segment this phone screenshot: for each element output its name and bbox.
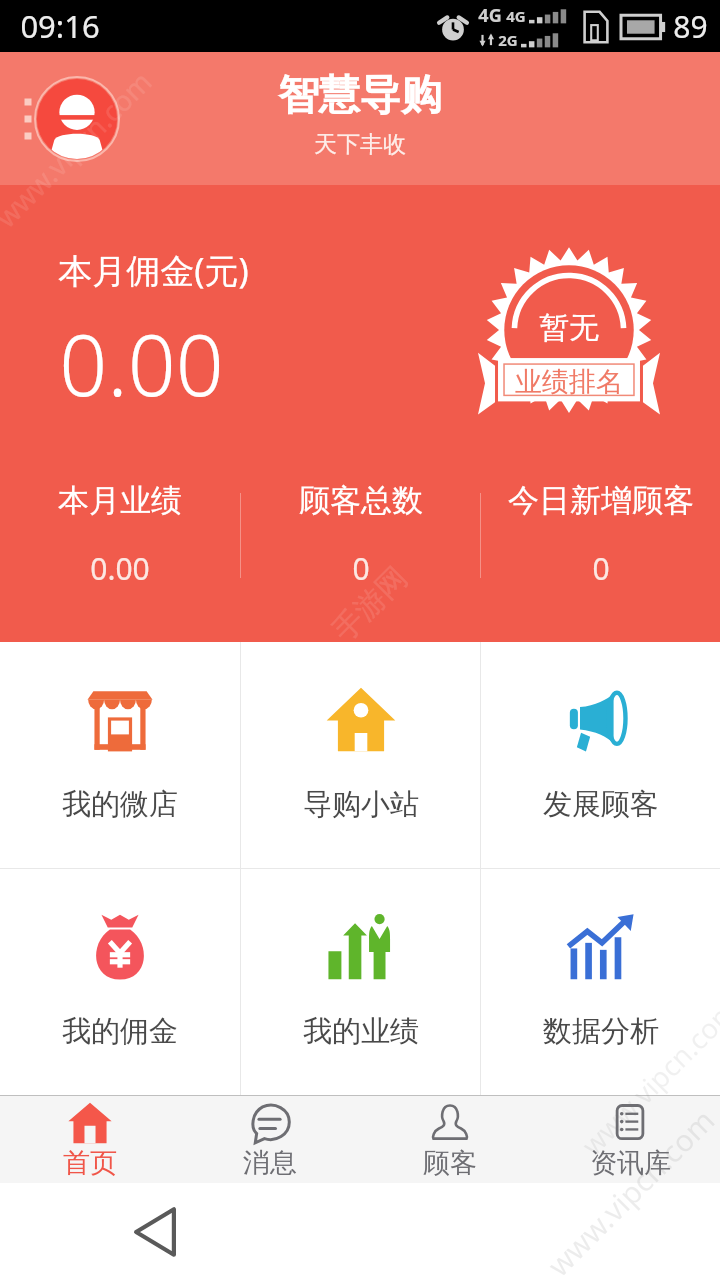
staticText: 发展顾客 — [543, 786, 659, 823]
staticText: 暂无 — [539, 309, 599, 347]
staticText: 资讯库 — [590, 1146, 671, 1180]
button[interactable]: 首页 — [0, 1096, 180, 1183]
staticText: 4G — [478, 3, 502, 28]
staticText: 今日新增顾客 — [508, 481, 694, 520]
button[interactable]: Back — [128, 1205, 182, 1259]
staticText: 0 — [592, 548, 610, 589]
staticText: 消息 — [243, 1146, 297, 1180]
staticText: 顾客 — [423, 1146, 477, 1180]
button[interactable]: 顾客 — [360, 1096, 540, 1183]
button[interactable]: 我的业绩 — [241, 869, 480, 1095]
staticText: 0.00 — [90, 548, 150, 589]
staticText: 0 — [352, 548, 370, 589]
button[interactable]: 我的微店 — [0, 642, 240, 868]
staticText: 09:16 — [20, 5, 100, 47]
staticText: www.vipcn.com — [0, 63, 159, 235]
staticText: 手游网 — [325, 559, 415, 649]
button[interactable]: 发展顾客 — [481, 642, 720, 868]
staticText: 智慧导购 — [278, 70, 442, 122]
button[interactable]: 资讯库 — [540, 1096, 720, 1183]
button[interactable]: More options — [10, 101, 46, 137]
staticText: 4G — [506, 6, 526, 26]
staticText: 0.00 — [59, 306, 224, 420]
button[interactable]: 数据分析 — [481, 869, 720, 1095]
staticText: 导购小站 — [303, 786, 419, 823]
staticText: 我的微店 — [62, 786, 178, 823]
button[interactable]: 消息 — [180, 1096, 360, 1183]
staticText: 顾客总数 — [299, 481, 423, 520]
staticText: 本月业绩 — [58, 481, 182, 520]
button[interactable]: 业绩排名 — [478, 267, 660, 419]
staticText: 本月佣金(元) — [58, 247, 249, 293]
button[interactable]: 我的佣金 — [0, 869, 240, 1095]
staticText: 89 — [673, 6, 708, 47]
staticText: 天下丰收 — [314, 130, 406, 159]
staticText: www.vipcn.com — [573, 991, 720, 1163]
staticText: www.vipcn.com — [538, 1100, 720, 1280]
staticText: 我的业绩 — [303, 1013, 419, 1050]
staticText: 数据分析 — [543, 1013, 659, 1050]
button[interactable]: Profile — [35, 77, 119, 161]
staticText: 2G — [498, 30, 518, 50]
staticText: 业绩排名 — [515, 365, 623, 399]
button[interactable]: 导购小站 — [241, 642, 480, 868]
staticText: 我的佣金 — [62, 1013, 178, 1050]
staticText: 首页 — [63, 1146, 117, 1180]
